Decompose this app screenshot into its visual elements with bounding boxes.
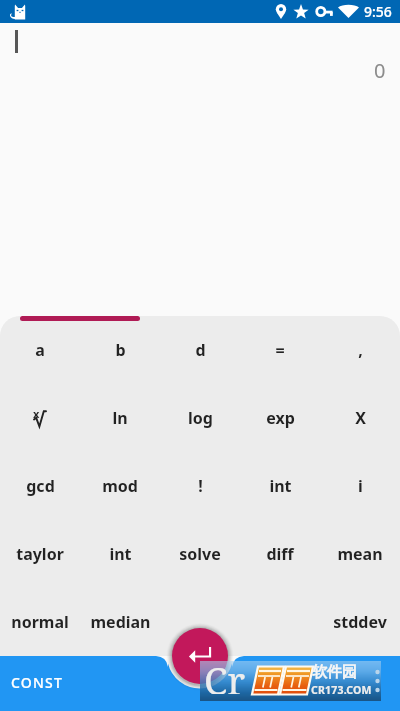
staticText: x xyxy=(33,406,40,421)
button[interactable]: d xyxy=(160,316,240,384)
button[interactable]: ln xyxy=(80,384,160,452)
button[interactable]: int xyxy=(240,452,320,520)
staticText: ! xyxy=(198,475,203,497)
staticText: i xyxy=(358,475,363,497)
staticText: a xyxy=(35,339,45,361)
button[interactable]: mod xyxy=(80,452,160,520)
staticText: ln xyxy=(112,407,128,429)
staticText: CR173.COM xyxy=(311,683,372,697)
staticText: mean xyxy=(337,543,383,565)
staticText: int xyxy=(269,475,292,497)
button[interactable]: X xyxy=(320,384,400,452)
staticText: Cr xyxy=(204,654,246,694)
button[interactable]: Enter xyxy=(172,628,228,684)
button[interactable]: CONST xyxy=(11,673,64,692)
staticText: mod xyxy=(102,475,138,497)
staticText: gcd xyxy=(26,475,55,497)
button[interactable]: ! xyxy=(160,452,240,520)
staticText: d xyxy=(195,339,206,361)
button[interactable]: i xyxy=(320,452,400,520)
staticText: diff xyxy=(266,543,294,565)
button[interactable]: solve xyxy=(160,520,240,588)
staticText: 软件园 xyxy=(312,663,357,682)
staticText: stddev xyxy=(333,611,387,633)
staticText: normal xyxy=(11,611,69,633)
button[interactable]: diff xyxy=(240,520,320,588)
button[interactable]: gcd xyxy=(0,452,80,520)
button[interactable]: log xyxy=(160,384,240,452)
staticText: X xyxy=(355,407,366,429)
staticText: log xyxy=(188,407,213,429)
button[interactable]: b xyxy=(80,316,160,384)
staticText: 9:56 xyxy=(364,2,392,21)
button[interactable]: taylor xyxy=(0,520,80,588)
button[interactable] xyxy=(160,588,240,656)
button[interactable]: mean xyxy=(320,520,400,588)
button[interactable]: x xyxy=(0,384,80,452)
button[interactable]: a xyxy=(0,316,80,384)
button[interactable]: normal xyxy=(0,588,80,656)
staticText: exp xyxy=(266,407,295,429)
staticText: 0 xyxy=(374,57,386,84)
button[interactable]: , xyxy=(320,316,400,384)
button[interactable]: exp xyxy=(240,384,320,452)
button[interactable]: int xyxy=(80,520,160,588)
staticText: solve xyxy=(179,543,221,565)
staticText: taylor xyxy=(16,543,64,565)
button[interactable]: = xyxy=(240,316,320,384)
staticText: median xyxy=(90,611,151,633)
staticText: b xyxy=(115,339,126,361)
staticText: = xyxy=(275,339,285,361)
button[interactable]: median xyxy=(80,588,160,656)
button[interactable]: stddev xyxy=(320,588,400,656)
staticText: int xyxy=(109,543,132,565)
staticText: , xyxy=(358,339,363,361)
